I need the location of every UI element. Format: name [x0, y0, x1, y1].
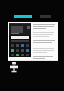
button[interactable]: [21, 49, 24, 52]
button[interactable]: [21, 44, 24, 47]
button[interactable]: Device icon: [10, 62, 18, 74]
button[interactable]: [26, 54, 29, 56]
button[interactable]: [21, 54, 24, 56]
button[interactable]: [11, 54, 14, 56]
button[interactable]: [16, 44, 19, 47]
button[interactable]: Device screenshot: [9, 23, 31, 57]
button[interactable]: [16, 54, 19, 56]
button[interactable]: [26, 49, 29, 52]
button[interactable]: [11, 49, 14, 52]
